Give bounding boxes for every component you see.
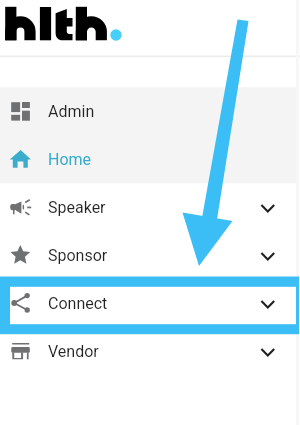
staticText: Vendor (48, 342, 99, 361)
button[interactable]: Speaker (0, 183, 300, 231)
staticText: Home (48, 150, 92, 169)
button[interactable]: Sponsor (0, 231, 300, 279)
staticText: Admin (48, 102, 95, 121)
staticText: Sponsor (48, 246, 108, 265)
staticText: Connect (48, 294, 108, 313)
button[interactable]: Connect (0, 279, 300, 327)
button[interactable]: Vendor (0, 327, 300, 375)
button[interactable]: Admin (0, 87, 300, 135)
button[interactable]: Home (0, 135, 300, 183)
button[interactable]: hlth (0, 0, 300, 56)
staticText: Speaker (48, 198, 106, 217)
